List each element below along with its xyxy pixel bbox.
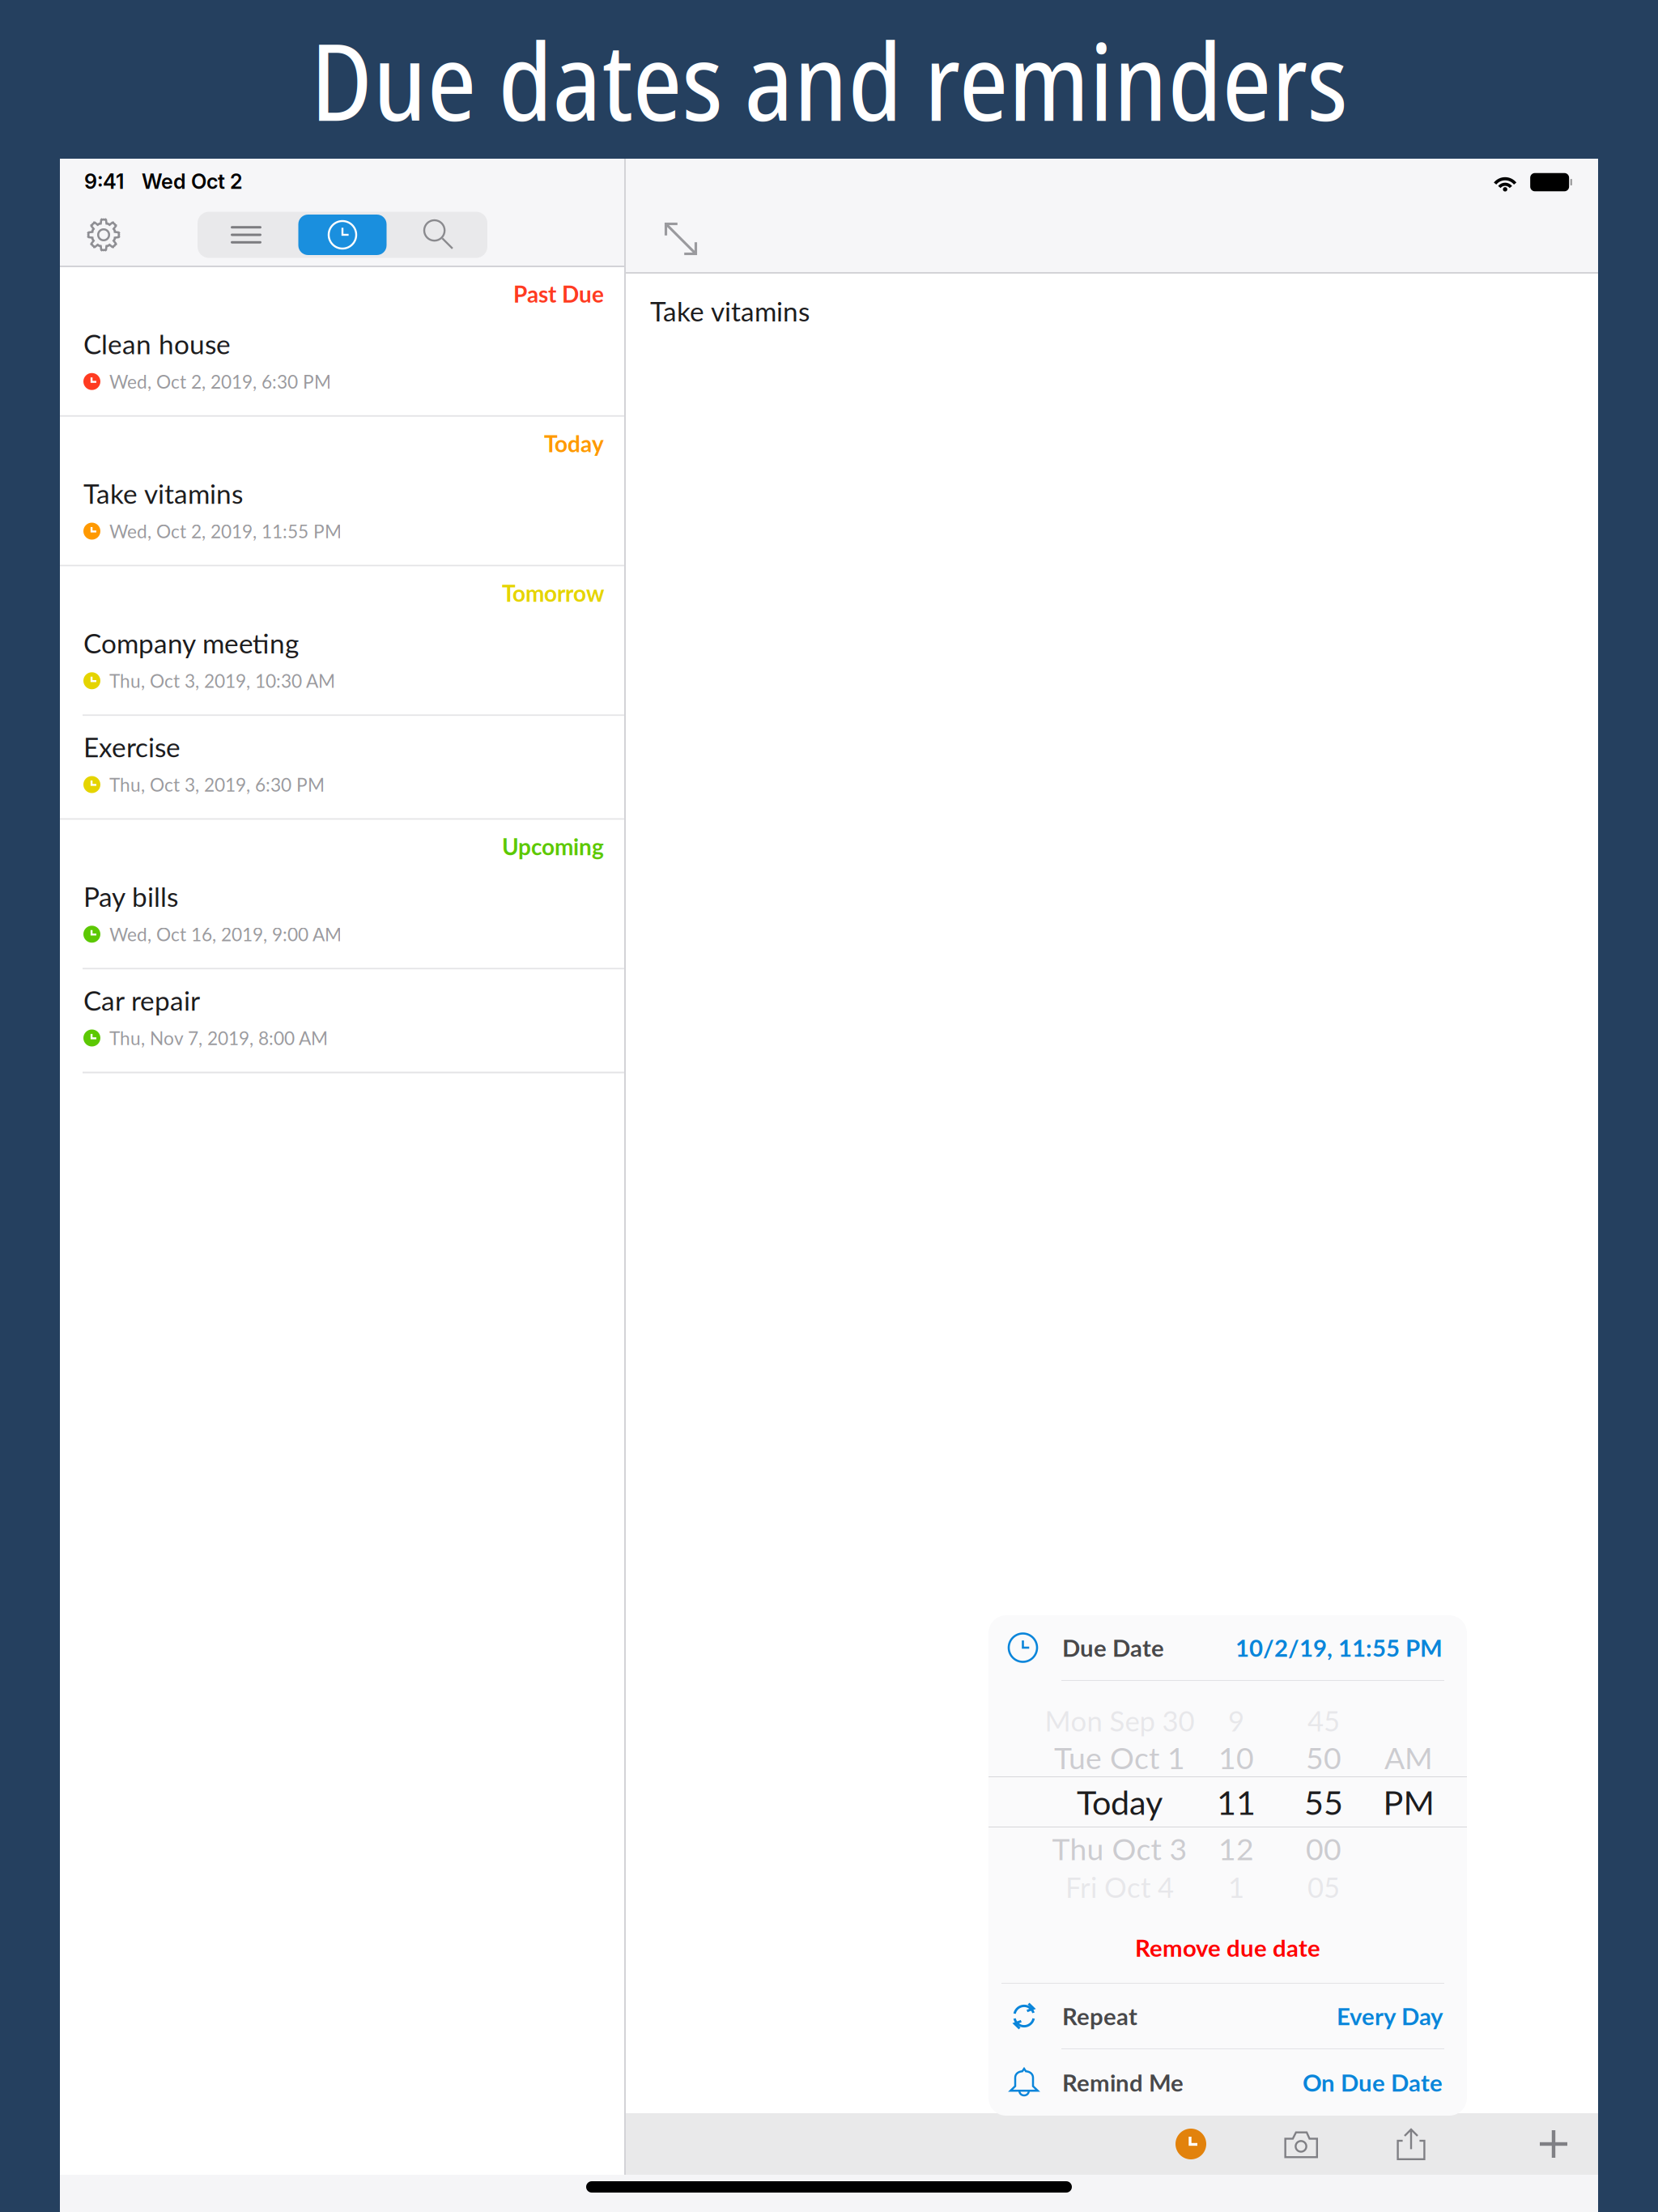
staticText: 12 [1218,1830,1254,1867]
staticText: Take vitamins [83,477,243,510]
button[interactable]: New task [1509,2113,1598,2175]
button[interactable]: Due Date [988,1615,1467,1680]
staticText: AM [1384,1739,1433,1776]
staticText: Thu, Nov 7, 2019, 8:00 AM [109,1027,328,1049]
staticText: Wed, Oct 2, 2019, 11:55 PM [109,520,342,542]
staticText: 05 [1307,1870,1340,1904]
button[interactable]: Company meeting [60,612,624,714]
button[interactable]: Repeat [988,1984,1467,2048]
staticText: Tomorrow [502,579,604,607]
staticText: 1 [1228,1870,1244,1904]
staticText: Tue Oct 1 [1054,1739,1185,1776]
button[interactable]: Car repair [60,969,624,1072]
staticText: Due dates and reminders [310,7,1348,152]
staticText: Company meeting [83,627,299,659]
staticText: Car repair [83,984,200,1016]
staticText: 9:41 [84,169,124,194]
staticText: 45 [1307,1704,1340,1737]
button[interactable]: All tasks [198,216,294,254]
button[interactable]: Camera [1262,2113,1340,2175]
button[interactable]: Pay bills [60,866,624,968]
staticText: Upcoming [502,833,604,860]
button[interactable]: Share [1372,2113,1450,2175]
staticText: Repeat [1062,2002,1137,2030]
staticText: 11 [1217,1782,1256,1822]
staticText: Clean house [83,328,231,360]
staticText: Wed, Oct 16, 2019, 9:00 AM [109,923,342,945]
staticText: On Due Date [1303,2068,1443,2097]
button[interactable]: Due date [1152,2113,1230,2175]
button[interactable]: Search [391,216,487,254]
staticText: 55 [1304,1782,1343,1822]
staticText: Thu Oct 3 [1052,1830,1187,1867]
button[interactable]: Remove due date [988,1933,1467,1962]
staticText: Take vitamins [650,295,810,327]
button[interactable]: Due dates [294,216,391,254]
staticText: Fri Oct 4 [1065,1870,1174,1904]
button[interactable]: Clean house [60,313,624,415]
button[interactable]: Take vitamins [60,463,624,565]
button[interactable]: Remind Me [988,2049,1467,2116]
staticText: Wed Oct 2 [142,169,243,194]
staticText: 9 [1228,1704,1244,1737]
staticText: Every Day [1337,2002,1443,2030]
button[interactable]: Expand [644,206,718,272]
staticText: Thu, Oct 3, 2019, 6:30 PM [109,774,325,796]
staticText: 00 [1306,1830,1341,1867]
staticText: Mon Sep 30 [1045,1704,1195,1737]
staticText: Due Date [1062,1633,1164,1662]
staticText: Pay bills [83,880,178,913]
staticText: Today [544,430,604,457]
staticText: Remove due date [1135,1933,1320,1962]
staticText: Exercise [83,731,181,763]
staticText: 50 [1306,1739,1341,1776]
button[interactable]: Settings [63,203,144,266]
staticText: Thu, Oct 3, 2019, 10:30 AM [109,670,335,692]
staticText: PM [1383,1782,1434,1822]
staticText: Today [1077,1782,1163,1822]
staticText: 10 [1218,1739,1254,1776]
staticText: Past Due [513,280,604,307]
staticText: Wed, Oct 2, 2019, 6:30 PM [109,371,331,393]
staticText: 10/2/19, 11:55 PM [1235,1633,1443,1662]
button[interactable]: Exercise [60,716,624,818]
staticText: Remind Me [1062,2068,1184,2097]
